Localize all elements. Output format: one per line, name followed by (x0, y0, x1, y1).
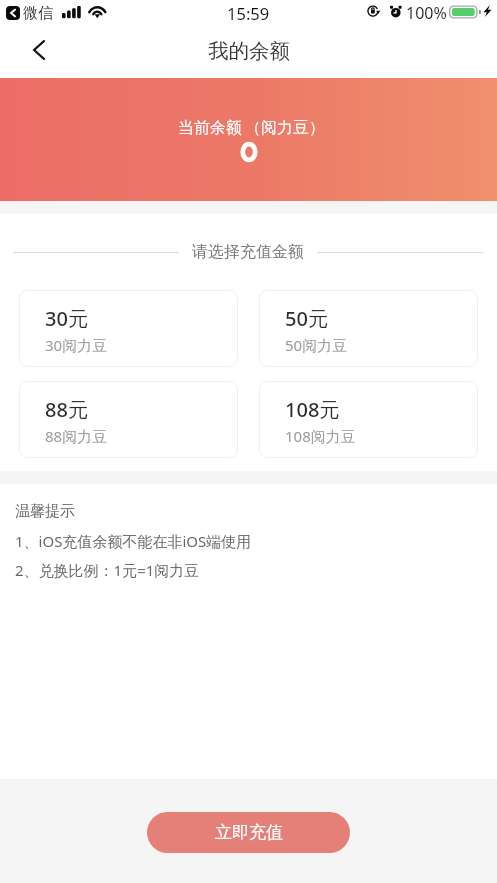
button[interactable]: 立即充值 (147, 812, 350, 853)
staticText: 1、iOS充值余额不能在非iOS端使用 (15, 531, 252, 551)
button[interactable]: Back to WeChat (6, 6, 20, 20)
button[interactable]: 50元 (259, 290, 478, 367)
staticText: 阅力豆 (261, 118, 309, 138)
staticText: 88阅力豆 (45, 426, 108, 446)
button[interactable]: Back (13, 24, 65, 76)
staticText: 108阅力豆 (285, 426, 356, 446)
staticText: 30元 (45, 305, 88, 332)
staticText: 50阅力豆 (285, 335, 348, 355)
staticText: 100% (406, 2, 447, 24)
staticText: 微信 (23, 4, 53, 23)
staticText: 15:59 (227, 2, 270, 24)
staticText: 立即充值 (215, 822, 283, 843)
staticText: 温馨提示 (15, 502, 75, 521)
staticText: 我的余额 (208, 38, 290, 64)
button[interactable]: 108元 (259, 381, 478, 458)
button[interactable]: 30元 (19, 290, 238, 367)
staticText: 当前余额 (178, 118, 242, 138)
staticText: 108元 (285, 396, 340, 423)
staticText: 30阅力豆 (45, 335, 108, 355)
staticText: 2、兑换比例：1元=1阅力豆 (15, 560, 200, 580)
staticText: 50元 (285, 305, 328, 332)
staticText: ） (309, 118, 325, 138)
staticText: （ (245, 118, 261, 138)
button[interactable]: 88元 (19, 381, 238, 458)
staticText: 88元 (45, 396, 88, 423)
staticText: 请选择充值金额 (192, 242, 304, 262)
